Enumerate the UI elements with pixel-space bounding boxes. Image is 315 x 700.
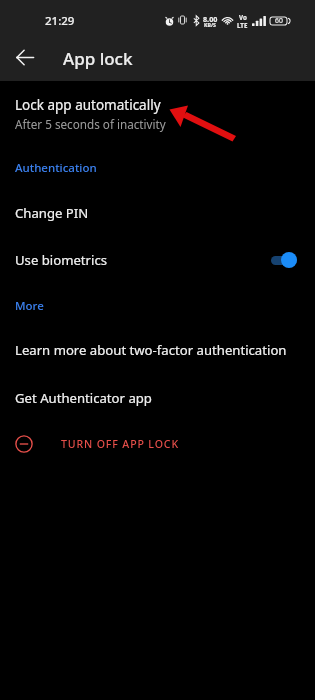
- staticText: Authentication: [15, 160, 97, 176]
- staticText: Lock app automatically: [15, 96, 161, 114]
- staticText: 60: [275, 16, 283, 25]
- staticText: 8.00: [203, 14, 218, 24]
- button[interactable]: Lock app automatically: [0, 91, 315, 140]
- button[interactable]: Learn more about two-factor authenticati…: [0, 336, 315, 364]
- staticText: Vo: [239, 13, 247, 21]
- button[interactable]: Use biometrics: [0, 246, 315, 274]
- button[interactable]: Change PIN: [0, 199, 315, 227]
- staticText: Use biometrics: [15, 251, 108, 269]
- button[interactable]: Back: [7, 39, 43, 75]
- staticText: Learn more about two-factor authenticati…: [15, 341, 287, 359]
- staticText: Get Authenticator app: [15, 389, 152, 407]
- button[interactable]: Get Authenticator app: [0, 384, 315, 412]
- staticText: After 5 seconds of inactivity: [15, 116, 166, 132]
- staticText: Change PIN: [15, 204, 89, 222]
- staticText: KB/S: [204, 21, 216, 28]
- staticText: App lock: [63, 47, 133, 70]
- staticText: LTE: [237, 21, 248, 29]
- button[interactable]: TURN OFF APP LOCK: [0, 430, 315, 458]
- staticText: TURN OFF APP LOCK: [61, 437, 179, 451]
- staticText: More: [15, 298, 44, 314]
- staticText: 21:29: [45, 13, 75, 29]
